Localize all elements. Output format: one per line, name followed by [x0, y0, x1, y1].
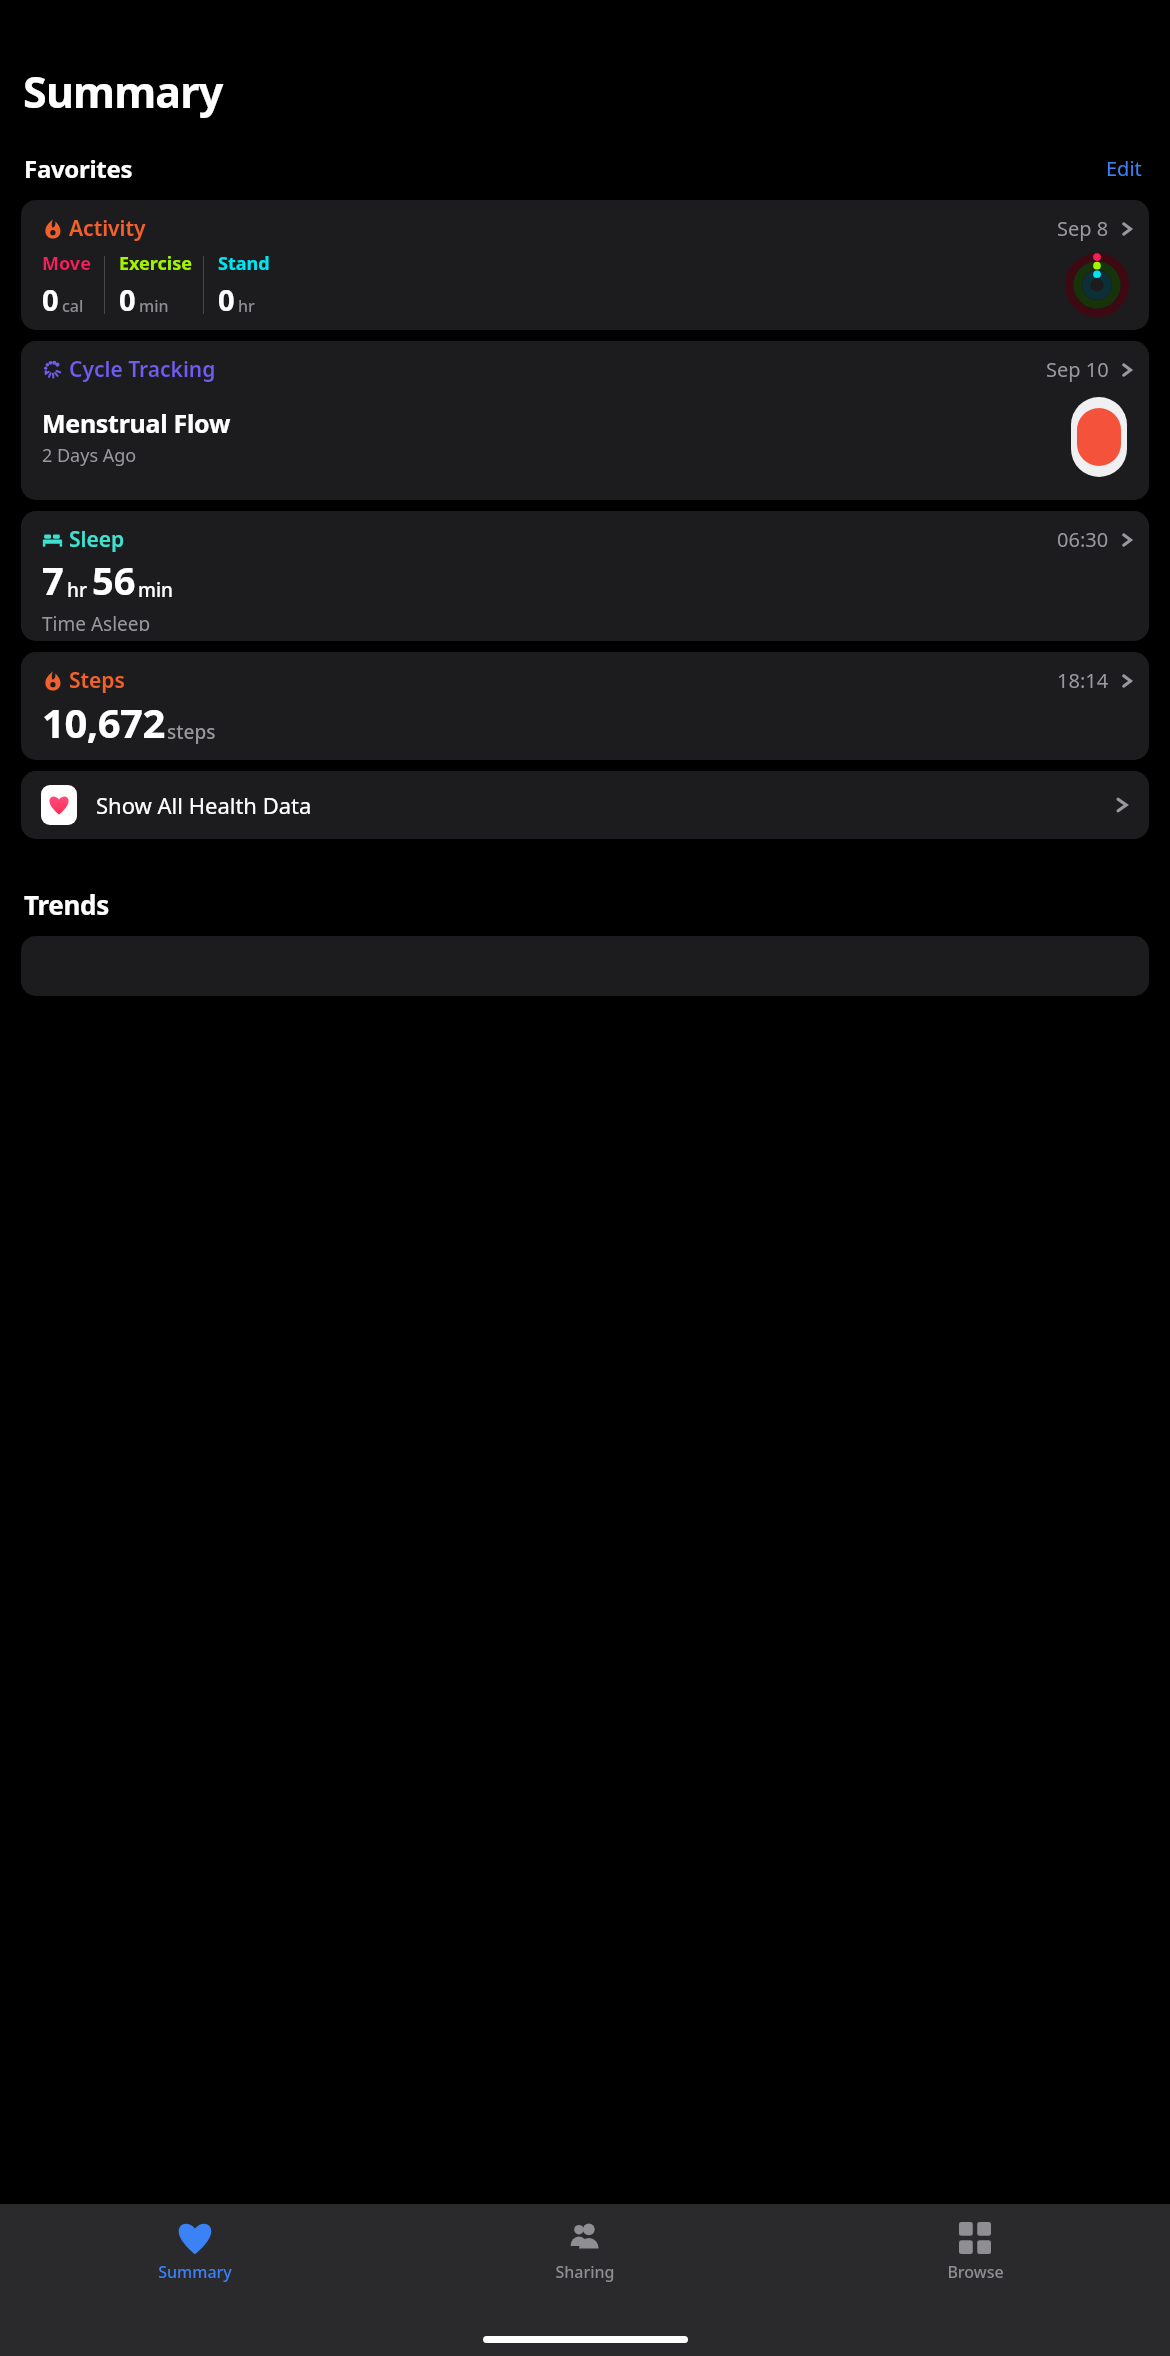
staticText: hr	[67, 577, 87, 603]
staticText: Show All Health Data	[96, 790, 312, 820]
staticText: min	[139, 295, 169, 317]
button[interactable]: Edit	[1102, 151, 1146, 186]
button[interactable]: Browse	[780, 2216, 1170, 2287]
staticText: Move	[42, 251, 91, 276]
staticText: 18:14	[1057, 667, 1109, 694]
button[interactable]: Steps	[21, 652, 1149, 760]
staticText: cal	[62, 295, 84, 317]
staticText: Sleep	[69, 525, 125, 554]
button[interactable]: Activity	[21, 200, 1149, 330]
staticText: Summary	[23, 62, 223, 121]
staticText: Edit	[1106, 155, 1142, 182]
staticText: Stand	[218, 251, 270, 276]
staticText: 06:30	[1057, 526, 1109, 553]
staticText: Favorites	[24, 152, 133, 185]
staticText: Time Asleep	[42, 611, 151, 631]
staticText: Sep 10	[1046, 356, 1109, 383]
staticText: Sep 8	[1057, 215, 1109, 242]
staticText: Trends	[24, 887, 109, 922]
button[interactable]: Cycle Tracking	[21, 341, 1149, 500]
staticText: 10,672	[42, 695, 165, 749]
staticText: Sharing	[555, 2261, 615, 2283]
button[interactable]: Sleep	[21, 511, 1149, 641]
button[interactable]: Sharing	[390, 2216, 780, 2287]
staticText: 0	[218, 280, 235, 319]
staticText: Steps	[69, 666, 125, 695]
button[interactable]: Summary	[0, 2216, 390, 2287]
staticText: 0	[119, 280, 136, 319]
staticText: min	[138, 577, 174, 603]
staticText: Exercise	[119, 251, 193, 276]
staticText: hr	[238, 295, 255, 317]
staticText: 0	[42, 280, 59, 319]
staticText: 2 Days Ago	[42, 443, 137, 468]
staticText: 56	[92, 554, 136, 606]
staticText: Browse	[947, 2261, 1004, 2283]
staticText: Activity	[69, 214, 146, 243]
staticText: 7	[42, 554, 64, 606]
button[interactable]: Show All Health Data	[21, 771, 1149, 839]
staticText: Cycle Tracking	[69, 355, 216, 384]
staticText: Menstrual Flow	[42, 406, 231, 440]
staticText: Summary	[158, 2261, 232, 2283]
staticText: steps	[167, 719, 216, 745]
